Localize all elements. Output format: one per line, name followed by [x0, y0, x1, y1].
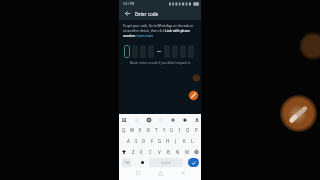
button[interactable]: F	[148, 135, 156, 146]
staticText: ?123	[124, 161, 130, 165]
staticText: Z	[132, 149, 135, 155]
staticText: W	[130, 127, 135, 133]
button[interactable]: Home	[156, 169, 164, 177]
staticText: Enter code	[135, 11, 159, 17]
staticText: Never enter a code if you didn't request…	[130, 61, 191, 65]
button[interactable]: Settings	[170, 117, 175, 122]
staticText: 3:21 PM	[123, 2, 135, 6]
staticText: K	[183, 138, 186, 144]
staticText: English	[161, 161, 171, 165]
button[interactable]: Recent apps	[134, 169, 142, 177]
button[interactable]: Keyboard layouts	[121, 117, 126, 122]
staticText: I	[179, 127, 181, 133]
button[interactable]: Z	[129, 146, 137, 157]
button[interactable]: ?123	[122, 158, 131, 167]
staticText: O	[186, 127, 190, 133]
button[interactable]: I	[176, 124, 184, 135]
staticText: To get your code, Go to WhatsApp on the …	[123, 24, 196, 38]
staticText: M	[185, 149, 189, 155]
button[interactable]: Emoji	[139, 158, 145, 167]
button[interactable]: English	[149, 158, 183, 167]
staticText: H	[166, 138, 170, 144]
button[interactable]: V	[155, 146, 164, 157]
staticText: U	[170, 127, 174, 133]
staticText: F	[151, 138, 154, 144]
button[interactable]: S	[132, 135, 140, 146]
button[interactable]: K	[180, 135, 188, 146]
staticText: B	[167, 149, 170, 155]
button[interactable]: H	[164, 135, 172, 146]
button[interactable]: J	[172, 135, 180, 146]
button[interactable]: Q	[120, 124, 128, 135]
staticText: T	[155, 127, 158, 133]
button[interactable]: D	[140, 135, 148, 146]
button[interactable]: U	[168, 124, 176, 135]
button[interactable]: E	[136, 124, 144, 135]
staticText: .	[185, 161, 186, 165]
button[interactable]: Shift	[119, 146, 129, 157]
staticText: C	[149, 149, 152, 155]
button[interactable]: L	[188, 135, 196, 146]
button[interactable]: Back	[179, 169, 187, 177]
button[interactable]: Clipboard	[134, 117, 139, 122]
staticText: Q	[122, 127, 126, 133]
button[interactable]: GIF	[158, 117, 163, 122]
button[interactable]: Comma	[131, 158, 139, 167]
button[interactable]: Voice input	[194, 117, 199, 122]
button[interactable]: Themes	[182, 117, 187, 122]
staticText: R	[147, 127, 150, 133]
staticText: J	[175, 138, 177, 144]
button[interactable]: P	[192, 124, 200, 135]
button[interactable]: W	[128, 124, 136, 135]
button[interactable]: C	[146, 146, 155, 157]
button[interactable]: A	[124, 135, 132, 146]
button[interactable]: B	[164, 146, 173, 157]
button[interactable]: Y	[160, 124, 168, 135]
staticText: D	[142, 138, 146, 144]
button[interactable]: T	[152, 124, 160, 135]
button[interactable]: X	[137, 146, 146, 157]
staticText: ,	[135, 161, 136, 165]
button[interactable]: M	[182, 146, 191, 157]
button[interactable]: G	[156, 135, 164, 146]
button[interactable]: Enter	[188, 158, 199, 167]
button[interactable]: Backspace	[191, 146, 201, 157]
staticText: S	[135, 138, 138, 144]
staticText: G	[158, 138, 162, 144]
button[interactable]: O	[184, 124, 192, 135]
button[interactable]: Stickers	[146, 117, 151, 122]
staticText: N	[176, 149, 180, 155]
button[interactable]	[124, 45, 130, 58]
staticText: Y	[163, 127, 166, 133]
button[interactable]: N	[173, 146, 182, 157]
button[interactable]: R	[144, 124, 152, 135]
staticText: A	[127, 138, 130, 144]
staticText: P	[195, 127, 198, 133]
staticText: X	[140, 149, 143, 155]
staticText: E	[139, 127, 142, 133]
staticText: V	[158, 149, 161, 155]
button[interactable]: Back	[124, 10, 131, 17]
staticText: L	[191, 138, 194, 144]
